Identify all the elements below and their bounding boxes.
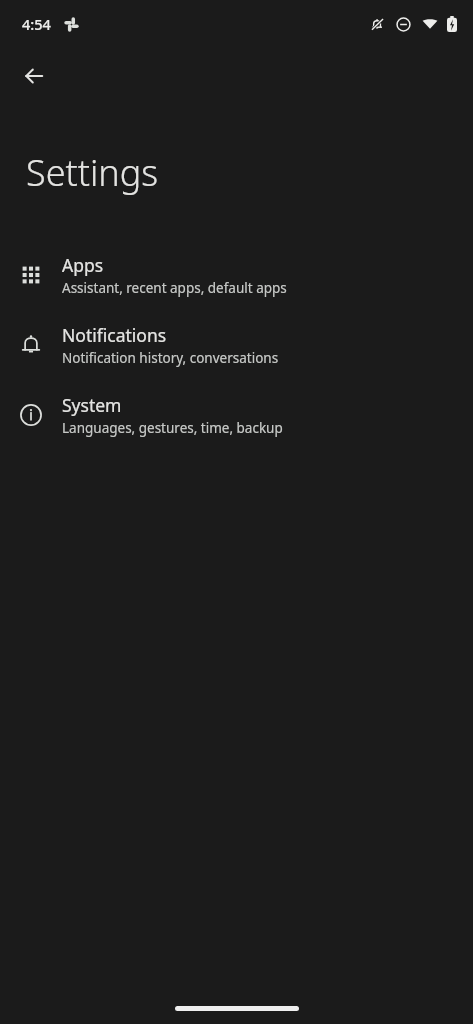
staticText: System — [62, 393, 122, 417]
button[interactable]: Notifications — [0, 310, 473, 380]
staticText: Settings — [26, 148, 159, 197]
staticText: Assistant, recent apps, default apps — [62, 279, 287, 297]
staticText: Notification history, conversations — [62, 349, 279, 367]
staticText: 4:54 — [22, 14, 51, 34]
button[interactable]: System — [0, 380, 473, 450]
button[interactable]: Apps — [0, 240, 473, 310]
staticText: Languages, gestures, time, backup — [62, 419, 283, 437]
staticText: Apps — [62, 253, 104, 277]
staticText: Notifications — [62, 323, 167, 347]
button[interactable]: Back — [10, 52, 58, 100]
